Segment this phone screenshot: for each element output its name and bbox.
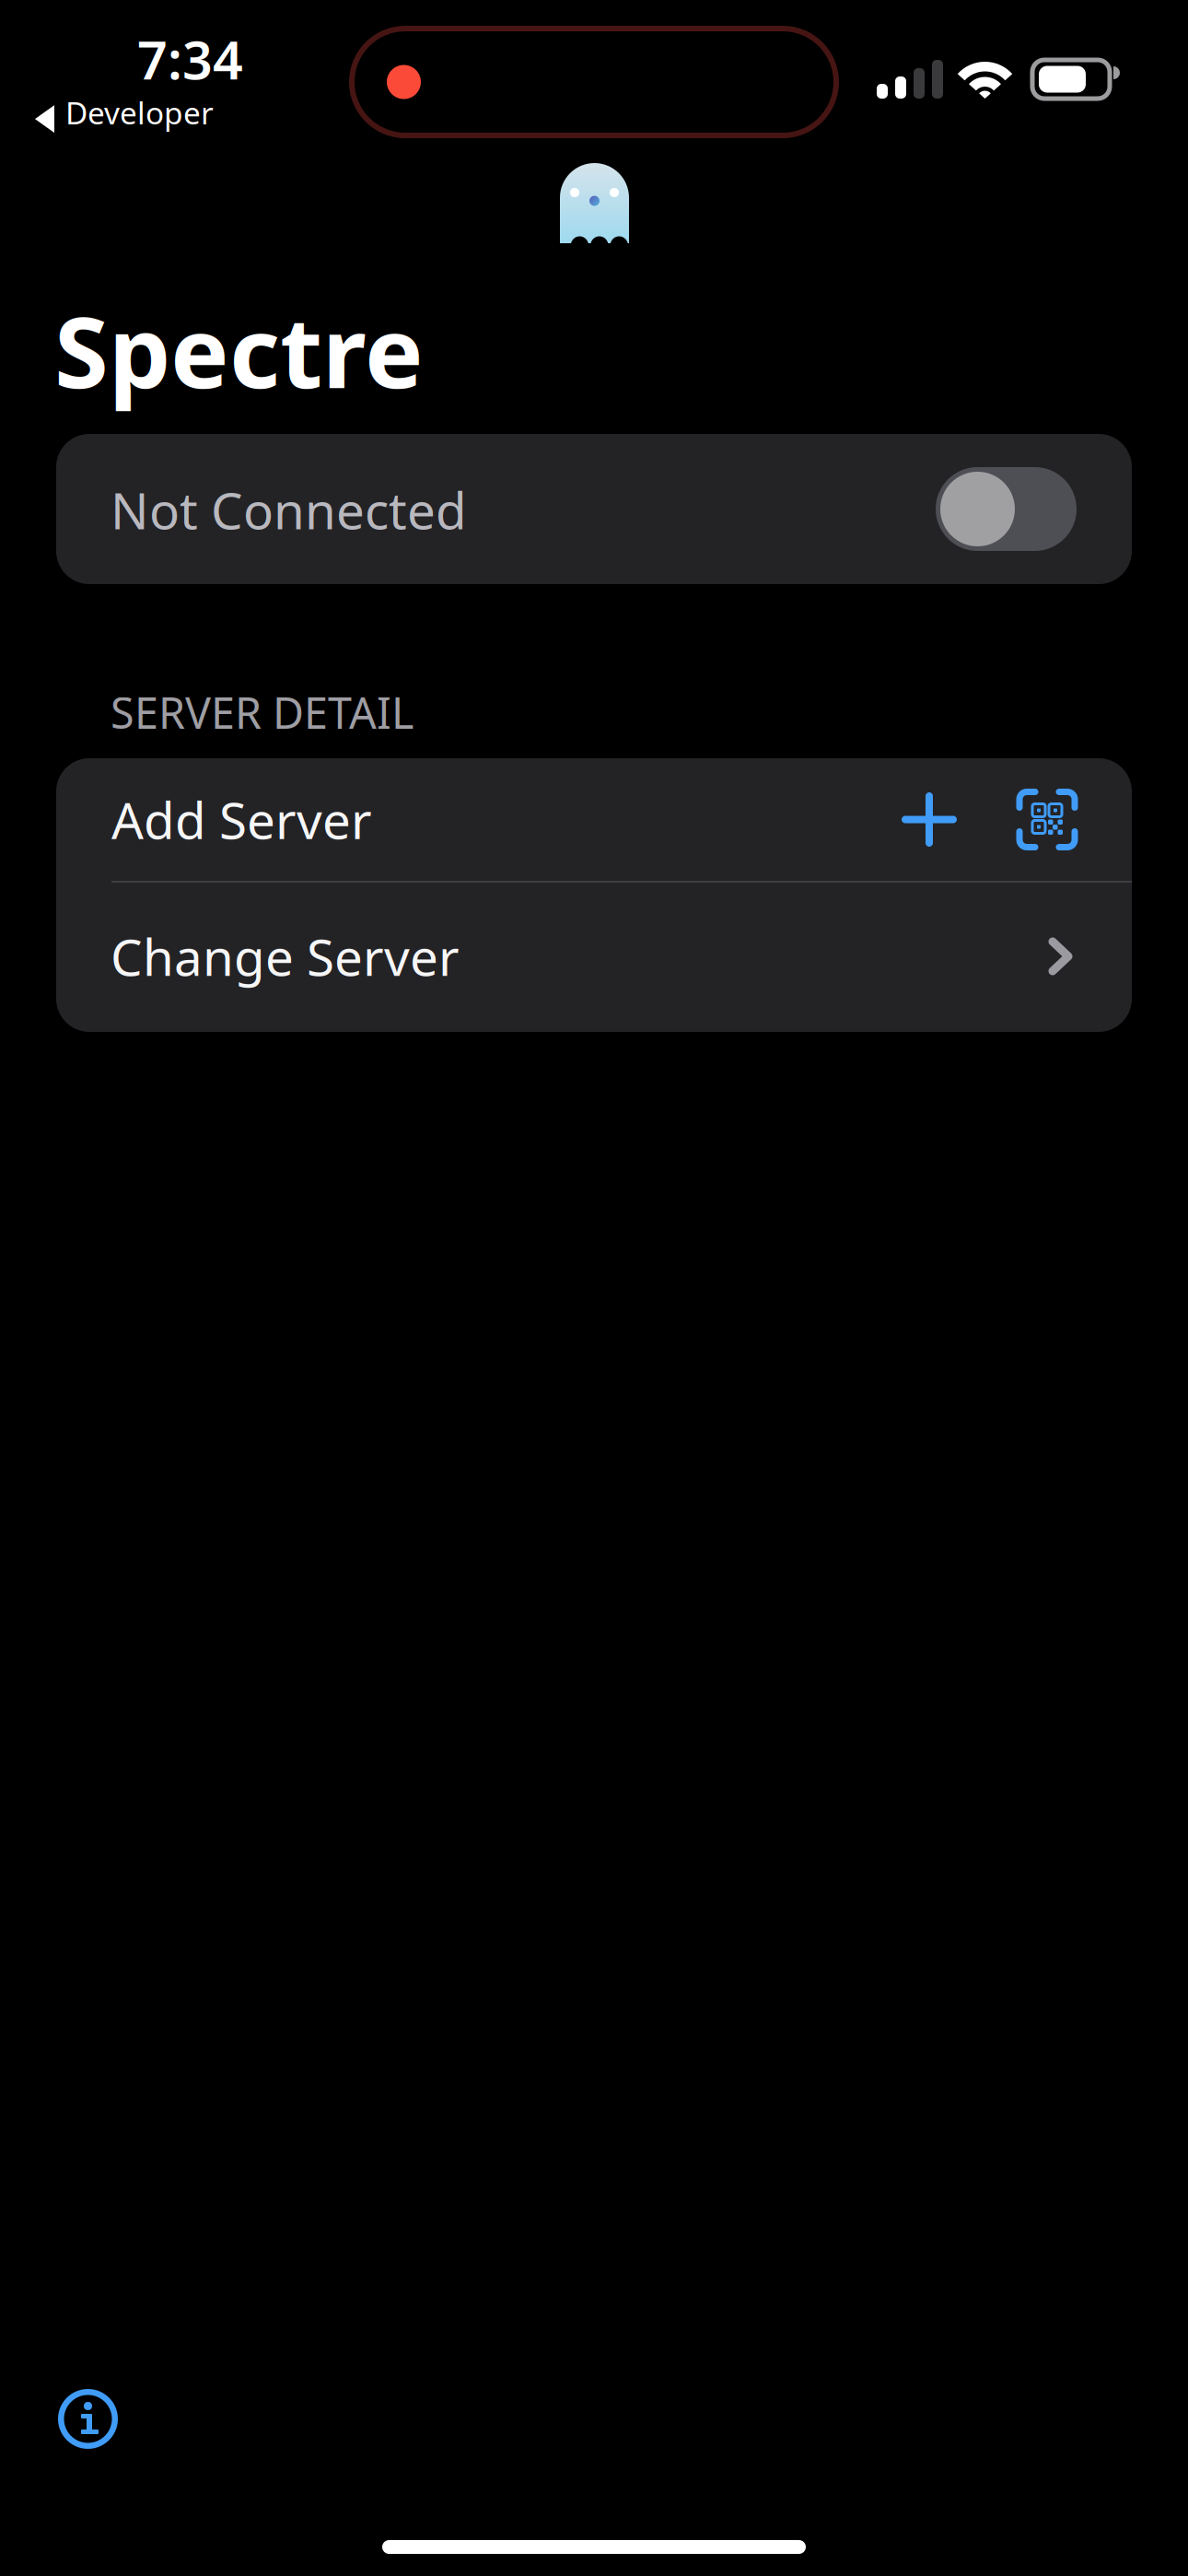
staticText: SERVER DETAIL <box>111 684 413 741</box>
button[interactable]: Add Server <box>56 758 1132 881</box>
staticText: Spectre <box>54 285 424 415</box>
button[interactable]: Connect <box>936 467 1077 551</box>
staticText: 7:34 <box>137 24 243 94</box>
button[interactable]: Information <box>58 2389 118 2449</box>
staticText: Change Server <box>111 923 460 990</box>
button[interactable]: Change Server <box>56 881 1132 1032</box>
staticText: Add Server <box>111 786 372 853</box>
staticText: Developer <box>65 92 214 133</box>
button[interactable]: Developer <box>35 92 214 133</box>
staticText: Not Connected <box>111 476 467 543</box>
